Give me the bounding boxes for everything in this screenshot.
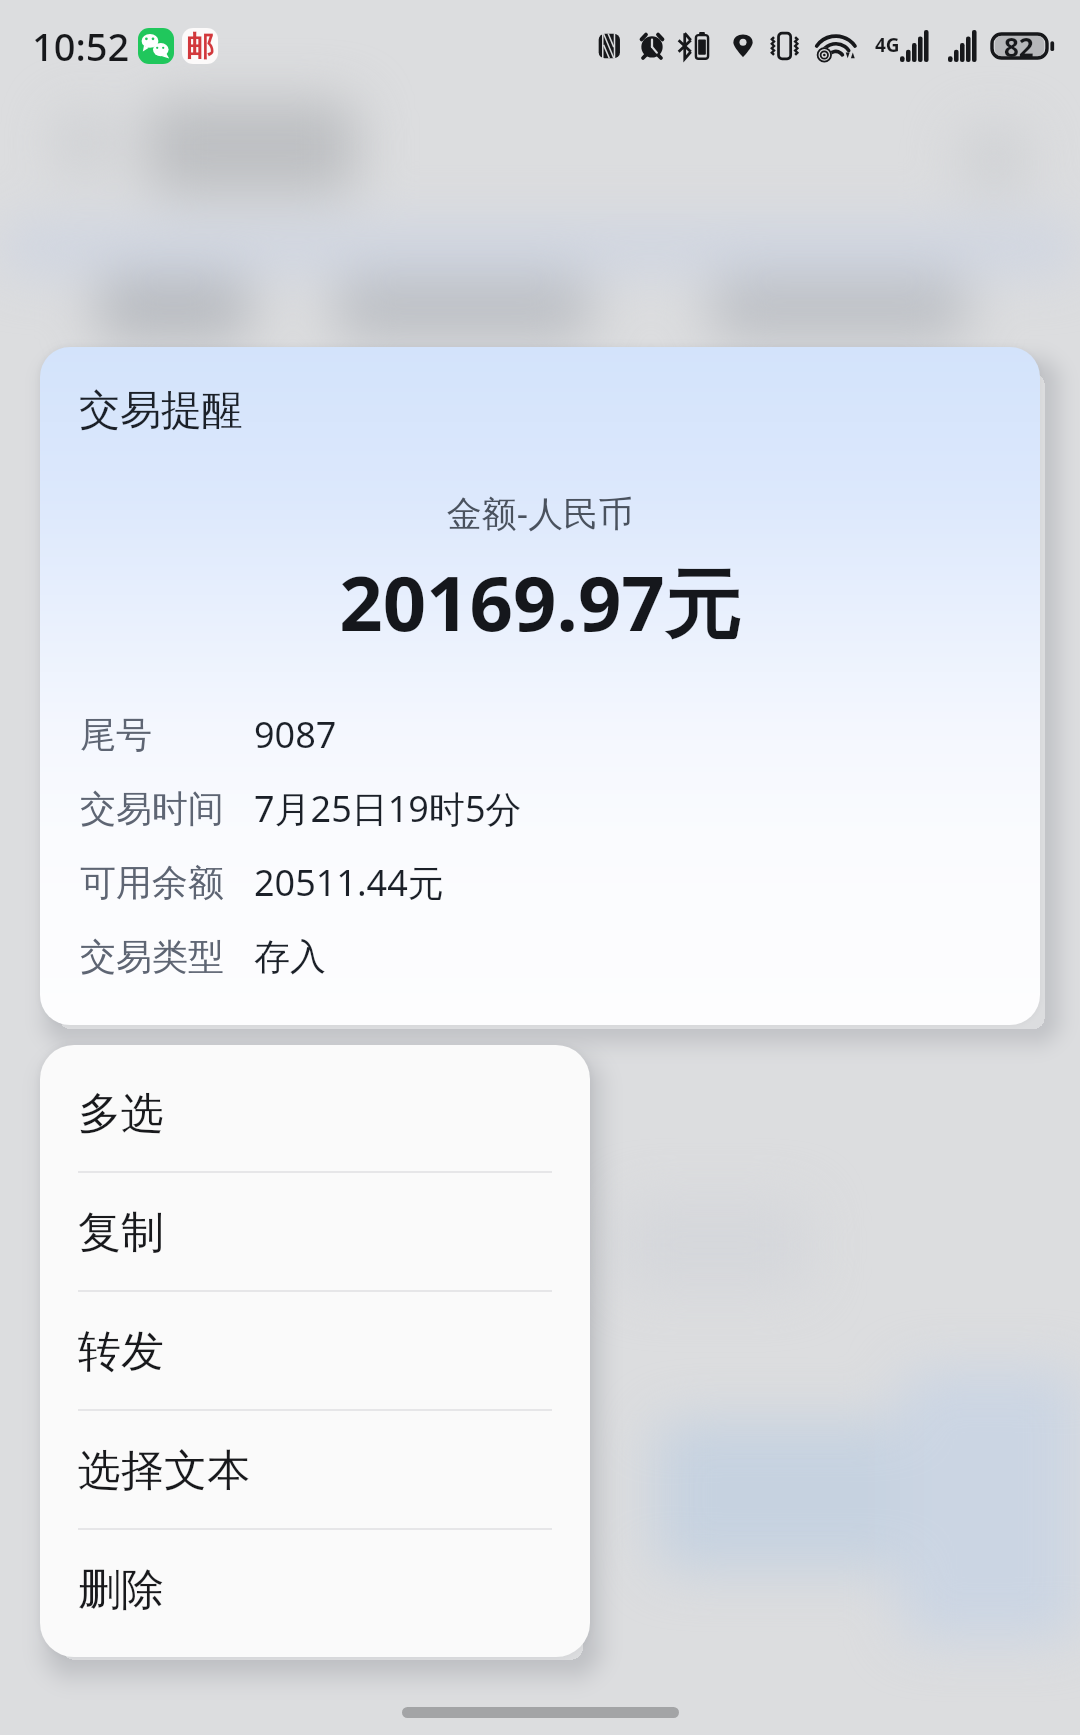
staticText: 删除 xyxy=(78,1563,164,1617)
staticText: 10:52 xyxy=(32,20,130,72)
staticText: 交易提醒 xyxy=(79,385,243,437)
staticText: 82 xyxy=(1004,29,1034,63)
staticText: 尾号 xyxy=(80,712,254,757)
button[interactable]: 转发 xyxy=(40,1292,590,1411)
staticText: 交易时间 xyxy=(80,786,254,831)
staticText: 存入 xyxy=(254,934,326,979)
staticText: 金额-人民币 xyxy=(40,489,1040,537)
staticText: 交易类型 xyxy=(80,934,254,979)
staticText: 20511.44元 xyxy=(254,858,444,907)
staticText: 选择文本 xyxy=(78,1444,250,1498)
staticText: 20169.97元 xyxy=(40,550,1040,654)
button[interactable]: 多选 xyxy=(40,1054,590,1173)
button[interactable]: 删除 xyxy=(40,1530,590,1649)
button[interactable]: 交易提醒 xyxy=(40,347,1040,1025)
staticText: 9087 xyxy=(254,710,337,759)
staticText: 可用余额 xyxy=(80,860,254,905)
staticText: 4G xyxy=(875,32,900,58)
button[interactable]: 选择文本 xyxy=(40,1411,590,1530)
button[interactable]: 复制 xyxy=(40,1173,590,1292)
staticText: 复制 xyxy=(78,1206,164,1260)
staticText: 多选 xyxy=(78,1087,164,1141)
staticText: 转发 xyxy=(78,1325,164,1379)
staticText: 7月25日19时5分 xyxy=(254,784,522,833)
staticText: 邮 xyxy=(186,29,214,64)
other: Home xyxy=(402,1707,679,1718)
